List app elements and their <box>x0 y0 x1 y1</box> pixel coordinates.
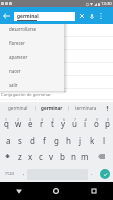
staticText: n <box>71 151 76 162</box>
staticText: r <box>40 118 44 129</box>
staticText: f <box>43 135 46 146</box>
button[interactable]: nacer <box>0 64 64 78</box>
staticText: 0 <box>107 117 109 122</box>
staticText: u <box>72 118 77 129</box>
staticText: 7 <box>74 117 76 122</box>
staticText: aparecer <box>9 54 28 60</box>
button[interactable]: Voice search <box>87 11 97 21</box>
staticText: b <box>60 151 65 162</box>
button[interactable]: h <box>62 131 74 148</box>
button[interactable]: 2 <box>12 114 24 131</box>
staticText: x <box>28 151 33 162</box>
button[interactable]: Home <box>37 182 75 200</box>
staticText: g <box>54 135 59 146</box>
staticText: t <box>51 118 54 129</box>
staticText: 1 <box>5 117 7 122</box>
button[interactable]: j <box>74 131 86 148</box>
staticText: j <box>79 135 82 146</box>
staticText: v <box>49 151 54 162</box>
button[interactable]: , <box>20 165 27 182</box>
staticText: s <box>18 135 22 146</box>
button[interactable]: k <box>86 131 98 148</box>
staticText: c <box>39 151 43 162</box>
staticText: l <box>103 135 106 146</box>
staticText: 13:30 <box>101 1 112 7</box>
staticText: w <box>15 118 22 129</box>
button[interactable]: 4 <box>36 114 47 131</box>
staticText: p <box>105 118 110 129</box>
staticText: terminara <box>75 105 97 111</box>
staticText: 5 <box>52 117 54 122</box>
button[interactable]: 5 <box>47 114 58 131</box>
button[interactable]: germinar <box>36 102 68 114</box>
staticText: z <box>18 151 22 162</box>
button[interactable]: g <box>50 131 62 148</box>
button[interactable]: 7 <box>69 114 80 131</box>
button[interactable]: f <box>38 131 50 148</box>
button[interactable]: terminara <box>69 102 102 114</box>
staticText: k <box>90 135 95 146</box>
staticText: ?123 <box>5 171 15 177</box>
button[interactable]: a <box>3 131 14 148</box>
staticText: 6 <box>63 117 65 122</box>
button[interactable]: c <box>35 148 46 165</box>
staticText: germinal <box>17 13 39 20</box>
staticText: h <box>66 135 71 146</box>
button[interactable]: 9 <box>91 114 102 131</box>
staticText: 2 <box>17 117 19 122</box>
button[interactable]: Backspace <box>90 148 113 165</box>
button[interactable]: aparecer <box>0 50 64 64</box>
staticText: 3 <box>29 117 31 122</box>
button[interactable]: florecer <box>0 36 64 50</box>
staticText: d <box>30 135 35 146</box>
staticText: germinal <box>8 105 28 111</box>
button[interactable]: s <box>14 131 26 148</box>
staticText: i <box>84 118 87 129</box>
button[interactable]: ?123 <box>0 165 20 182</box>
button[interactable]: 8 <box>80 114 91 131</box>
button[interactable]: 3 <box>24 114 36 131</box>
staticText: desarrollarse <box>9 26 37 32</box>
button[interactable]: More options <box>96 11 106 21</box>
button[interactable]: v <box>46 148 57 165</box>
button[interactable]: l <box>98 131 110 148</box>
button[interactable]: germinal <box>0 102 35 114</box>
staticText: . <box>91 170 93 177</box>
button[interactable]: d <box>26 131 38 148</box>
staticText: o <box>94 118 99 129</box>
staticText: 8 <box>85 117 87 122</box>
button[interactable]: n <box>68 148 79 165</box>
button[interactable]: 1 <box>0 114 12 131</box>
button[interactable]: germinal <box>14 12 75 21</box>
button[interactable]: Clear <box>77 11 87 21</box>
staticText: 9 <box>96 117 98 122</box>
button[interactable]: desarrollarse <box>0 22 64 36</box>
staticText: Conjugación de germinar <box>1 92 52 98</box>
button[interactable]: m <box>79 148 90 165</box>
button[interactable]: z <box>15 148 25 165</box>
staticText: , <box>23 170 25 177</box>
staticText: a <box>6 135 11 146</box>
staticText: germinar <box>41 105 63 111</box>
button[interactable]: . <box>88 165 96 182</box>
button[interactable]: b <box>57 148 68 165</box>
staticText: salir <box>9 82 18 88</box>
staticText: 4 <box>41 117 43 122</box>
button[interactable]: Back <box>1 10 12 21</box>
button[interactable]: Back <box>0 182 37 200</box>
button[interactable]: Recents <box>75 182 113 200</box>
staticText: nacer <box>9 68 21 74</box>
button[interactable]: salir <box>0 78 64 91</box>
button[interactable]: x <box>25 148 35 165</box>
button[interactable]: 0 <box>102 114 113 131</box>
button[interactable]: Voice input <box>102 102 113 114</box>
staticText: q <box>4 118 9 129</box>
staticText: florecer <box>9 40 25 46</box>
button[interactable]: Enter <box>96 165 113 182</box>
staticText: e <box>28 118 33 129</box>
button[interactable]: Shift <box>0 148 15 165</box>
staticText: y <box>61 118 66 129</box>
staticText: m <box>81 151 89 162</box>
button[interactable]: 6 <box>58 114 69 131</box>
